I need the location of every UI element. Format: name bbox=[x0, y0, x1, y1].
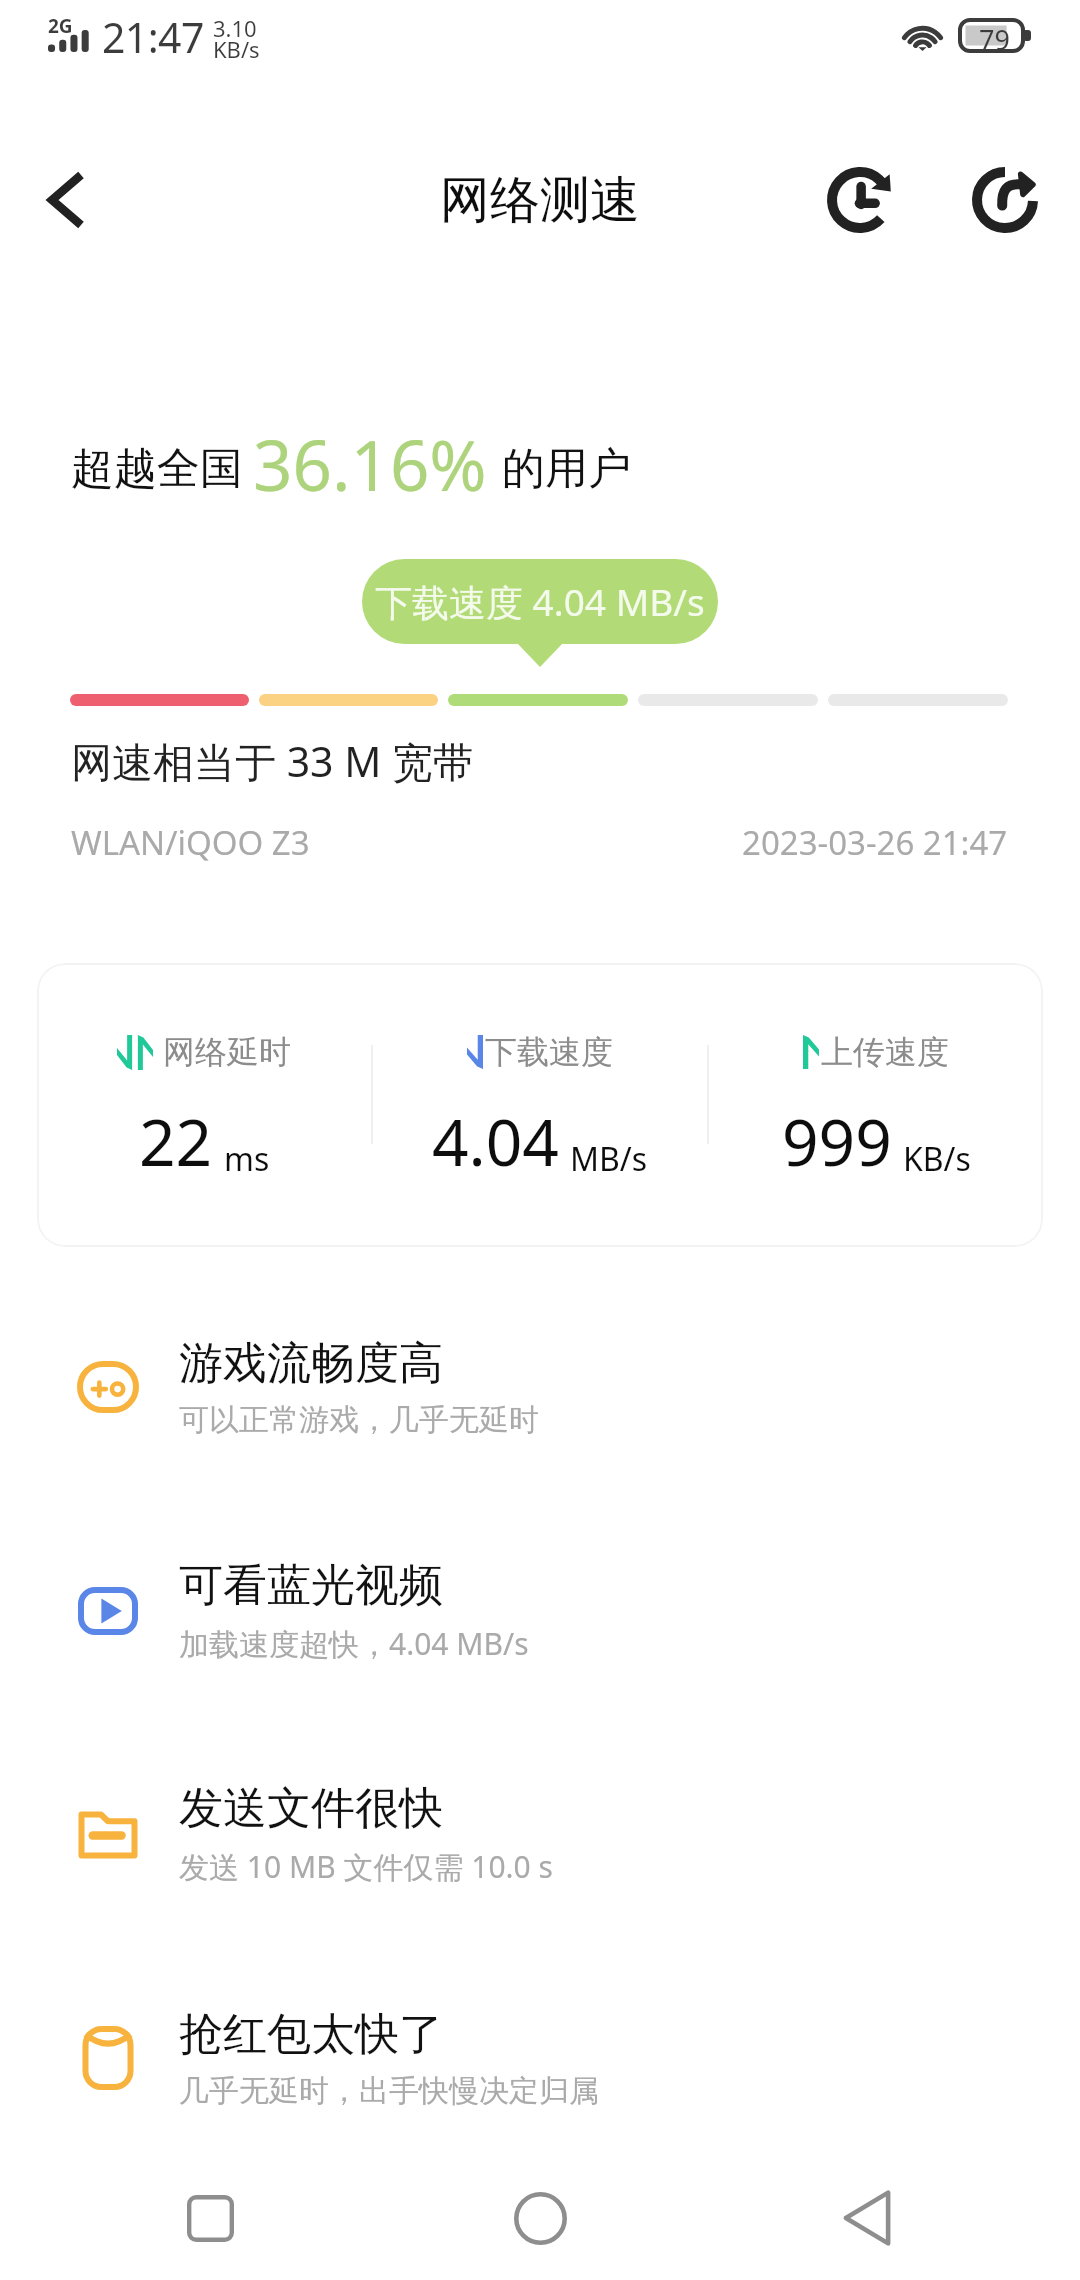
button[interactable]: Share bbox=[945, 140, 1065, 260]
staticText: MB/s bbox=[570, 1137, 648, 1181]
staticText: 3.10 bbox=[213, 13, 257, 43]
staticText: 2023-03-26 21:47 bbox=[742, 820, 1008, 865]
staticText: 抢红包太快了 bbox=[179, 2007, 443, 2062]
staticText: 可以正常游戏，几乎无延时 bbox=[179, 1401, 539, 1439]
staticText: 4.04 bbox=[432, 1098, 559, 1185]
staticText: 2G bbox=[48, 13, 73, 39]
staticText: 22 bbox=[139, 1098, 213, 1185]
staticText: 发送 10 MB 文件仅需 10.0 s bbox=[179, 1846, 553, 1887]
button[interactable]: Back bbox=[6, 140, 126, 260]
staticText: 999 bbox=[782, 1098, 892, 1185]
staticText: 下载速度 bbox=[485, 1032, 613, 1072]
button[interactable]: 游戏流畅度高 bbox=[0, 1325, 1080, 1449]
staticText: WLAN/iQOO Z3 bbox=[71, 820, 310, 865]
staticText: 79 bbox=[979, 21, 1010, 52]
staticText: 21:47 bbox=[102, 9, 204, 65]
staticText: 的用户 bbox=[502, 442, 631, 496]
staticText: 几乎无延时，出手快慢决定归属 bbox=[179, 2072, 599, 2110]
staticText: 网络延时 bbox=[163, 1032, 291, 1072]
staticText: 网络测速 bbox=[440, 169, 640, 232]
button[interactable]: Recents bbox=[130, 2160, 290, 2276]
button[interactable]: Back bbox=[787, 2160, 947, 2276]
staticText: 36.16% bbox=[253, 417, 487, 497]
staticText: ms bbox=[224, 1137, 270, 1181]
staticText: 加载速度超快，4.04 MB/s bbox=[179, 1623, 529, 1664]
staticText: 可看蓝光视频 bbox=[179, 1558, 443, 1613]
button[interactable]: 可看蓝光视频 bbox=[0, 1549, 1080, 1673]
staticText: 游戏流畅度高 bbox=[179, 1336, 443, 1391]
staticText: 超越全国 bbox=[71, 442, 243, 496]
button[interactable]: History bbox=[800, 140, 920, 260]
staticText: 下载速度 4.04 MB/s bbox=[375, 576, 705, 627]
staticText: KB/s bbox=[903, 1137, 971, 1181]
staticText: KB/s bbox=[213, 34, 260, 64]
staticText: 网速相当于 33 M 宽带 bbox=[71, 733, 475, 789]
staticText: 上传速度 bbox=[821, 1032, 949, 1072]
button[interactable]: Home bbox=[460, 2160, 620, 2276]
button[interactable]: 发送文件很快 bbox=[0, 1772, 1080, 1896]
button[interactable]: 抢红包太快了 bbox=[0, 1996, 1080, 2120]
staticText: 发送文件很快 bbox=[179, 1781, 443, 1836]
